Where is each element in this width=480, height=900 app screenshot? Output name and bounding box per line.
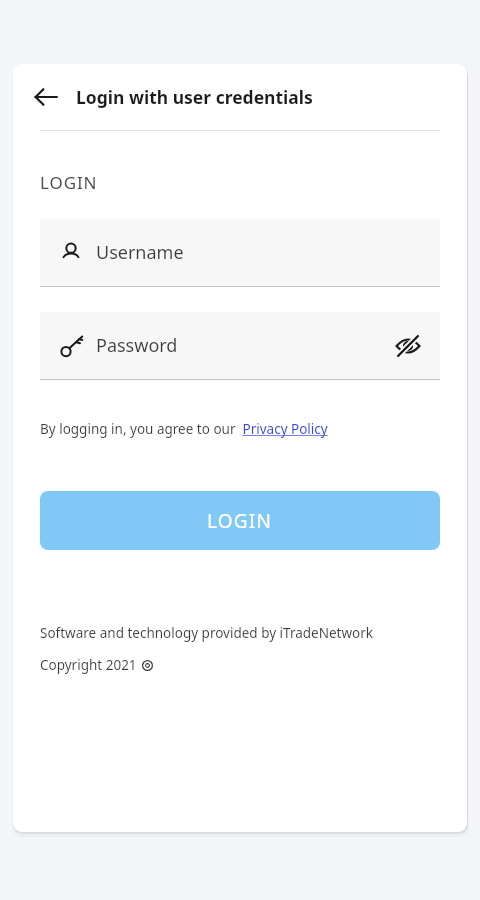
button[interactable]: By logging in, you agree to our Privacy … [40, 420, 328, 438]
staticText: By logging in, you agree to our Privacy … [40, 420, 328, 438]
button[interactable]: Username [40, 219, 440, 287]
button[interactable]: Password [40, 312, 440, 380]
staticText: Password [96, 333, 178, 358]
staticText: Software and technology provided by iTra… [40, 624, 374, 642]
button[interactable]: LOGIN [40, 491, 440, 550]
button[interactable]: Show password [386, 324, 430, 368]
staticText: LOGIN [40, 171, 98, 194]
staticText: Username [96, 240, 184, 265]
staticText: Copyright 2021 [40, 656, 137, 674]
button[interactable]: Back [24, 75, 68, 119]
staticText: LOGIN [207, 508, 273, 534]
staticText: Login with user credentials [76, 85, 313, 109]
